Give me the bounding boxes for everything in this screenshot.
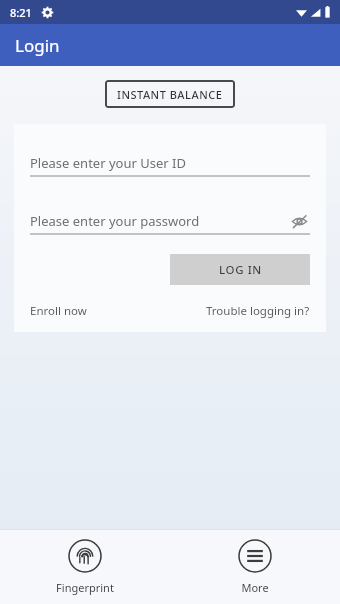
button[interactable]: Fingerprint bbox=[0, 533, 170, 601]
button[interactable]: LOG IN bbox=[170, 254, 310, 285]
staticText: Please enter your password bbox=[30, 212, 200, 230]
staticText: Login bbox=[15, 34, 60, 57]
button[interactable]: Please enter your User ID bbox=[30, 150, 310, 176]
button[interactable]: Show password bbox=[288, 210, 310, 232]
staticText: Please enter your User ID bbox=[30, 154, 186, 172]
staticText: 8:21 bbox=[10, 5, 32, 20]
button[interactable]: Enroll now bbox=[30, 303, 87, 319]
button[interactable]: Please enter your password bbox=[30, 208, 310, 234]
staticText: Fingerprint bbox=[56, 580, 114, 595]
staticText: INSTANT BALANCE bbox=[117, 87, 223, 102]
button[interactable]: More bbox=[170, 533, 340, 601]
staticText: Enroll now bbox=[30, 303, 87, 319]
staticText: More bbox=[241, 580, 269, 595]
staticText: Trouble logging in? bbox=[206, 303, 310, 319]
button[interactable]: INSTANT BALANCE bbox=[105, 80, 235, 108]
staticText: LOG IN bbox=[219, 262, 262, 278]
button[interactable]: Trouble logging in? bbox=[206, 303, 310, 319]
